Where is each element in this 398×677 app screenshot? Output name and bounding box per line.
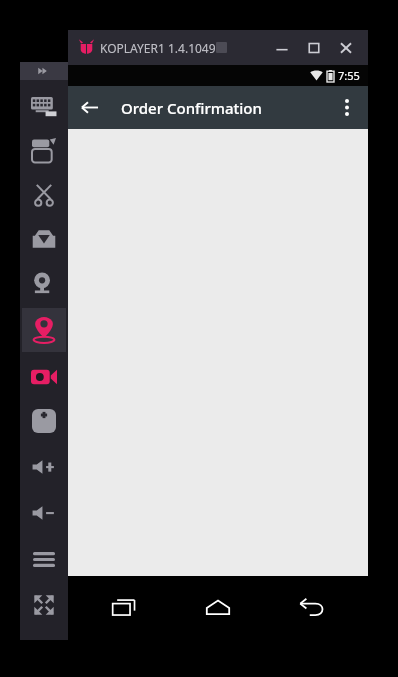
button[interactable]: Back	[275, 576, 349, 640]
button[interactable]: Camera off	[22, 268, 66, 298]
button[interactable]: Install APK	[22, 406, 66, 436]
button[interactable]: Recent apps	[88, 576, 162, 640]
button[interactable]: Collapse toolbar	[20, 62, 68, 80]
button[interactable]: Screenshot	[22, 136, 66, 166]
button[interactable]: Close	[330, 30, 362, 65]
button[interactable]: Location	[22, 308, 66, 352]
button[interactable]: Navigate up	[68, 86, 111, 129]
button[interactable]: Fullscreen	[22, 590, 66, 620]
button[interactable]: Home	[181, 576, 255, 640]
button[interactable]: Record video	[22, 362, 66, 392]
staticText: Order Confirmation	[121, 98, 262, 118]
staticText: 7:55	[338, 68, 360, 83]
button[interactable]: Volume down	[22, 498, 66, 528]
button[interactable]: Keyboard off	[22, 92, 66, 122]
button[interactable]: More options	[325, 86, 368, 129]
button[interactable]: Cut	[22, 180, 66, 210]
button[interactable]: Volume up	[22, 452, 66, 482]
button[interactable]: Menu	[22, 544, 66, 574]
button[interactable]: Install	[22, 224, 66, 254]
button[interactable]: Minimize	[266, 30, 298, 65]
button[interactable]: Maximize	[298, 30, 330, 65]
staticText: KOPLAYER1 1.4.1049	[100, 40, 216, 56]
